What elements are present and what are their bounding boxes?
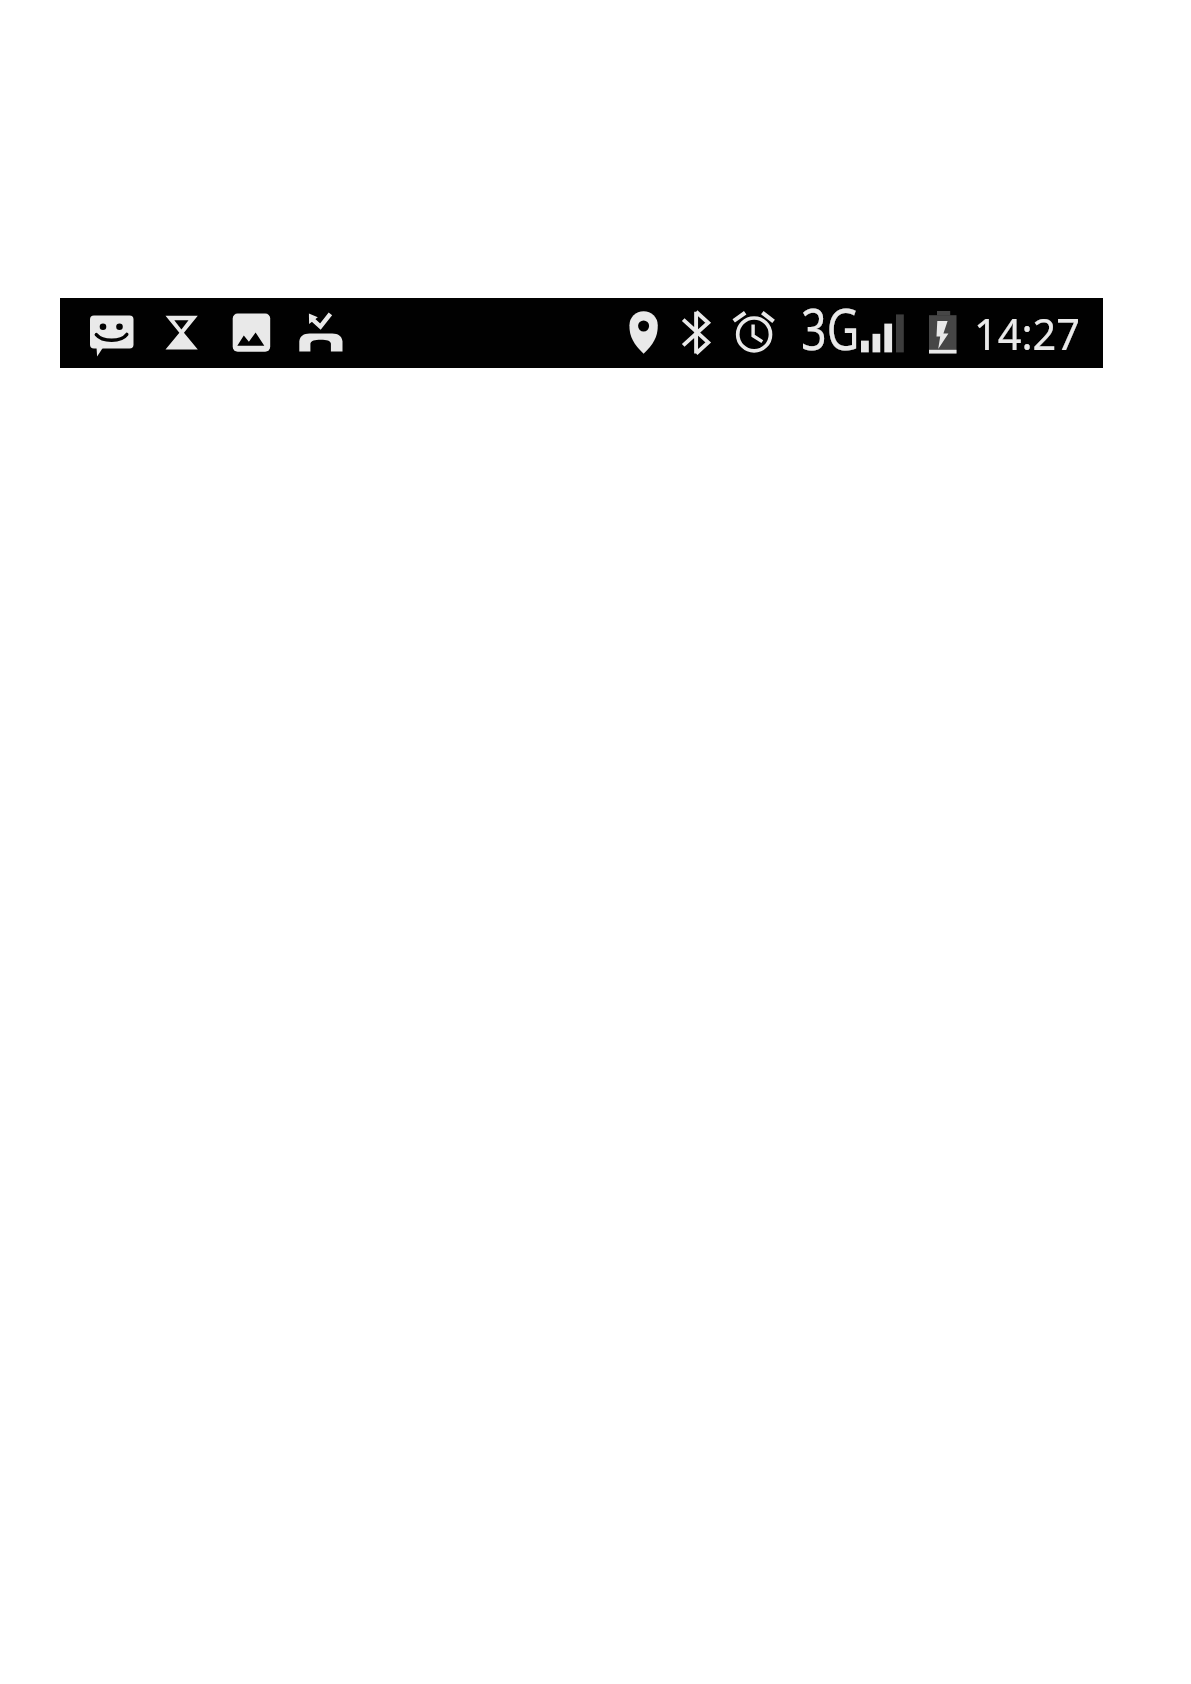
button[interactable]: Downloading (161, 298, 202, 368)
button[interactable]: Alarm set (729, 298, 778, 368)
button[interactable]: Bluetooth on (678, 298, 713, 368)
button[interactable]: Location in use (625, 298, 662, 368)
staticText: 3G (801, 290, 859, 360)
button[interactable]: Battery charging (925, 298, 961, 368)
button[interactable]: Clock, 14:27 (970, 298, 1082, 368)
button[interactable]: New text message (86, 298, 138, 368)
button[interactable]: Status bar (60, 298, 1103, 368)
button[interactable]: 3G signal strength (797, 298, 908, 368)
button[interactable]: Screenshot captured (228, 298, 274, 368)
button[interactable]: Missed call (295, 298, 347, 368)
staticText: 14:27 (974, 304, 1080, 363)
